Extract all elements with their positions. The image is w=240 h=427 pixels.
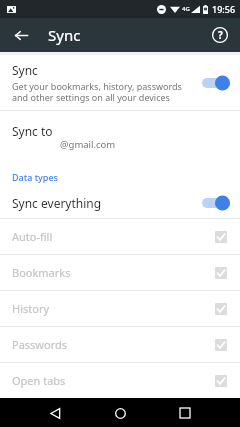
button[interactable]: Auto-fill checkbox xyxy=(212,228,230,246)
staticText: Sync everything xyxy=(12,195,202,211)
staticText: Auto-fill xyxy=(12,229,212,244)
staticText: Sync xyxy=(48,25,81,45)
button[interactable]: Bookmarks checkbox xyxy=(212,264,230,282)
staticText: Open tabs xyxy=(12,373,212,388)
button[interactable]: Toggle xyxy=(202,195,230,211)
button[interactable]: Help xyxy=(208,23,232,47)
staticText: @gmail.com xyxy=(60,138,116,151)
staticText: Passwords xyxy=(12,337,212,352)
button[interactable]: Passwords xyxy=(0,327,240,362)
button[interactable]: Back xyxy=(44,402,66,424)
button[interactable]: Sync everything xyxy=(0,188,240,218)
button[interactable]: Home xyxy=(109,402,131,424)
button[interactable]: Toggle xyxy=(202,75,230,91)
button[interactable]: Recent apps xyxy=(174,402,196,424)
button[interactable]: Sync xyxy=(0,55,240,110)
button[interactable]: Open tabs xyxy=(0,363,240,398)
button[interactable]: History checkbox xyxy=(212,300,230,318)
button[interactable]: Bookmarks xyxy=(0,255,240,290)
staticText: 4G xyxy=(182,5,190,13)
button[interactable]: Sync to xyxy=(0,111,240,166)
button[interactable]: Open tabs checkbox xyxy=(212,372,230,390)
staticText: Data types xyxy=(12,171,58,183)
staticText: 19:56 xyxy=(212,3,236,15)
button[interactable]: Auto-fill xyxy=(0,219,240,254)
button[interactable]: Passwords checkbox xyxy=(212,336,230,354)
staticText: Get your bookmarks, history, passwords a… xyxy=(12,80,182,103)
staticText: Sync to xyxy=(12,123,53,139)
staticText: Bookmarks xyxy=(12,265,212,280)
button[interactable]: History xyxy=(0,291,240,326)
button[interactable]: Back xyxy=(8,22,34,48)
staticText: ? xyxy=(218,28,223,42)
staticText: Sync xyxy=(12,62,38,78)
staticText: History xyxy=(12,301,212,316)
